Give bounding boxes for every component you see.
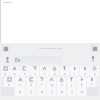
button[interactable]: y [50,66,59,76]
button[interactable]: a [4,77,14,87]
staticText: En [15,57,21,63]
button[interactable] [77,87,86,96]
staticText: q [4,72,6,76]
button[interactable] [26,87,36,96]
button[interactable]: More options [91,45,98,52]
button[interactable]: r [30,66,39,76]
button[interactable] [15,87,25,96]
button[interactable] [67,87,76,96]
button[interactable]: l [87,77,96,87]
staticText: h [61,83,63,87]
staticText: f [41,83,42,87]
staticText: t [44,72,45,76]
button[interactable]: k [77,77,86,87]
button[interactable]: f [37,77,46,87]
button[interactable] [57,87,66,96]
staticText: k [81,83,83,87]
staticText: y [54,72,56,76]
staticText: j [71,83,72,87]
button[interactable]: Keyboard settings [2,45,9,52]
button[interactable]: p [90,66,99,76]
staticText: o [84,72,86,76]
button[interactable]: t [40,66,49,76]
button[interactable]: e [20,66,29,76]
button[interactable]: h [57,77,66,87]
staticText: i [74,72,75,76]
staticText: l [91,83,92,87]
staticText: p [94,72,96,76]
staticText: s [19,83,21,87]
button[interactable]: j [67,77,76,87]
button[interactable]: q [1,66,9,76]
staticText: a [8,83,10,87]
button[interactable]: w [10,66,19,76]
button[interactable] [37,87,46,96]
staticText: d [30,83,32,87]
button[interactable]: En [13,56,63,63]
button[interactable]: i [70,66,79,76]
staticText: w [13,72,16,76]
staticText: g [51,83,53,87]
button[interactable]: Voice input [3,55,11,63]
button[interactable]: g [47,77,56,87]
button[interactable]: s [15,77,25,87]
staticText: r [34,72,36,76]
button[interactable]: u [60,66,69,76]
button[interactable]: Microphone [89,55,97,63]
button[interactable]: o [80,66,89,76]
staticText: e [24,72,26,76]
button[interactable]: d [26,77,36,87]
button[interactable] [47,87,56,96]
staticText: u [64,72,66,76]
